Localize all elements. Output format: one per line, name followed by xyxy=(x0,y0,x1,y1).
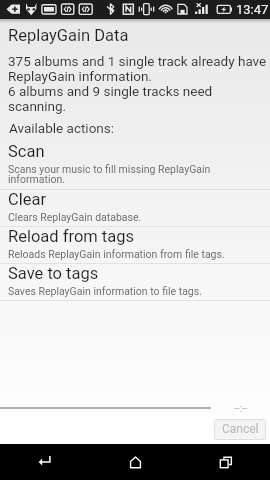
staticText: Save to tags xyxy=(8,264,99,283)
staticText: Scans your music to fill missing ReplayG… xyxy=(8,163,268,186)
staticText: --:-- xyxy=(234,403,248,414)
button[interactable]: Clear xyxy=(0,190,270,226)
staticText: Reload from tags xyxy=(8,227,135,246)
button[interactable]: Cancel xyxy=(214,419,266,440)
staticText: Clears ReplayGain database. xyxy=(8,211,142,223)
staticText: Saves ReplayGain information to file tag… xyxy=(8,285,202,297)
button[interactable]: Recent apps xyxy=(207,444,243,480)
button[interactable]: Save to tags xyxy=(0,264,270,300)
button[interactable]: Home xyxy=(117,444,153,480)
staticText: ReplayGain Data xyxy=(8,26,129,45)
button[interactable]: Scan xyxy=(0,142,270,189)
staticText: 375 albums and 1 single track already ha… xyxy=(8,54,268,114)
staticText: 13:47 xyxy=(236,3,269,17)
button[interactable]: Back xyxy=(27,444,63,480)
staticText: Cancel xyxy=(222,423,259,436)
staticText: Clear xyxy=(8,190,47,209)
button[interactable]: Reload from tags xyxy=(0,227,270,263)
staticText: Scan xyxy=(8,142,45,161)
staticText: Available actions: xyxy=(9,121,115,136)
staticText: Reloads ReplayGain information from file… xyxy=(8,248,225,260)
